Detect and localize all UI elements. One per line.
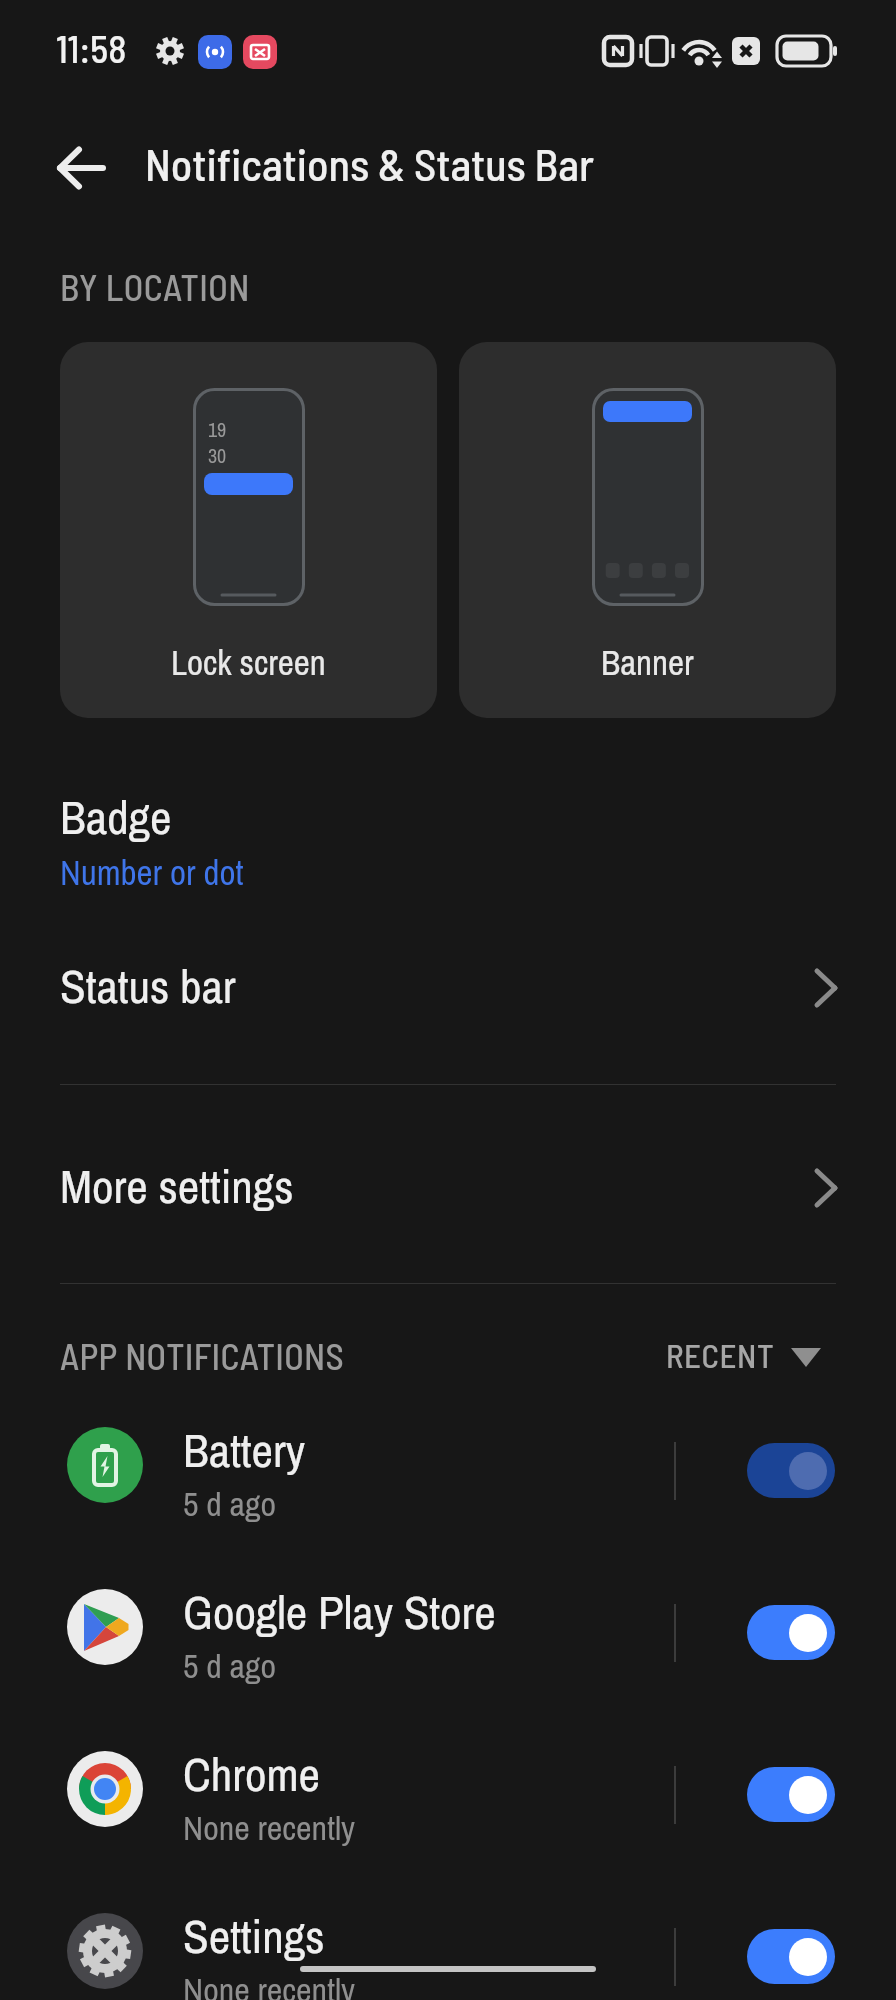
staticText: Google Play Store bbox=[183, 1580, 496, 1643]
staticText: Notifications & Status Bar bbox=[145, 137, 594, 190]
button[interactable]: RECENT bbox=[650, 1326, 840, 1382]
button[interactable]: Settings bbox=[0, 1876, 896, 2000]
staticText: 19 30 bbox=[208, 416, 227, 469]
button[interactable]: 19 30 bbox=[60, 342, 437, 718]
staticText: 11:58 bbox=[56, 25, 127, 71]
button[interactable] bbox=[747, 1605, 835, 1660]
staticText: None recently bbox=[183, 1805, 356, 1851]
staticText: Settings bbox=[183, 1904, 325, 1967]
staticText: Battery bbox=[183, 1418, 306, 1481]
button[interactable]: Status bar bbox=[0, 930, 896, 1046]
staticText: RECENT bbox=[666, 1335, 775, 1375]
button[interactable]: Google Play Store bbox=[0, 1552, 896, 1714]
staticText: More settings bbox=[60, 1154, 294, 1217]
staticText: None recently bbox=[183, 1967, 356, 2000]
button[interactable] bbox=[747, 1767, 835, 1822]
button[interactable]: Banner bbox=[459, 342, 836, 718]
staticText: Lock screen bbox=[171, 639, 326, 686]
button[interactable]: Battery bbox=[0, 1390, 896, 1552]
staticText: Chrome bbox=[183, 1742, 321, 1805]
button[interactable] bbox=[56, 148, 106, 188]
button[interactable]: More settings bbox=[0, 1130, 896, 1246]
button[interactable] bbox=[747, 1929, 835, 1984]
staticText: BY LOCATION bbox=[60, 265, 250, 308]
staticText: Status bar bbox=[60, 954, 236, 1017]
staticText: Banner bbox=[601, 639, 694, 686]
button[interactable]: Badge bbox=[0, 768, 896, 908]
staticText: 5 d ago bbox=[183, 1481, 277, 1527]
staticText: APP NOTIFICATIONS bbox=[60, 1334, 345, 1377]
staticText: Number or dot bbox=[60, 849, 244, 896]
button[interactable]: Chrome bbox=[0, 1714, 896, 1876]
staticText: Badge bbox=[60, 785, 172, 848]
button[interactable] bbox=[747, 1443, 835, 1498]
staticText: 5 d ago bbox=[183, 1643, 277, 1689]
